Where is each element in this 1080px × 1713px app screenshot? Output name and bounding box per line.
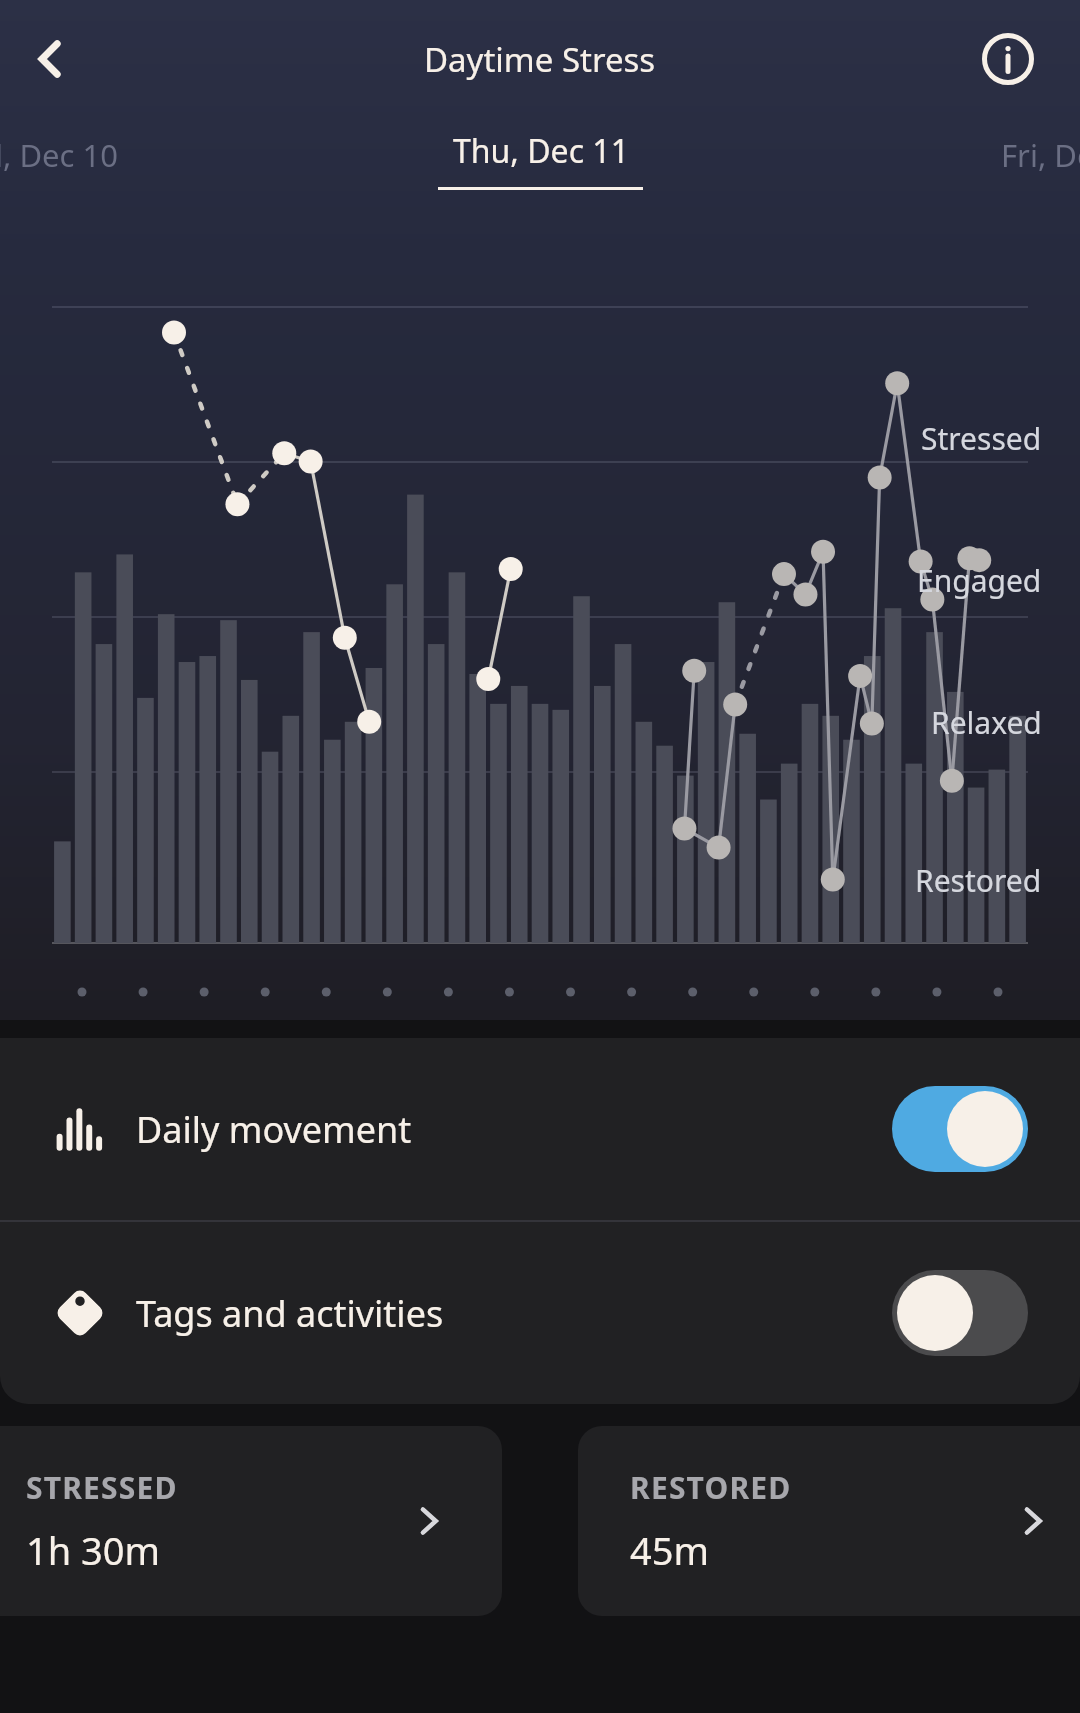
staticText: 12 pm (344, 1034, 430, 1073)
button[interactable]: Thu, Dec 11 (438, 129, 643, 190)
staticText: RESTORED (630, 1467, 792, 1508)
button[interactable]: RESTORED (578, 1426, 1080, 1616)
button[interactable]: Fri, Dec (1001, 134, 1080, 176)
button[interactable]: On (892, 1086, 1028, 1172)
staticText: Daily movement (136, 1105, 412, 1154)
button[interactable]: STRESSED (0, 1426, 502, 1616)
staticText: Relaxed (931, 702, 1042, 743)
staticText: 1h 30m (26, 1524, 161, 1576)
staticText: Thu, Dec 11 (453, 129, 629, 173)
staticText: Stressed (921, 418, 1042, 459)
staticText: 7:31 am (16, 1034, 125, 1073)
staticText: 6 pm (648, 1034, 718, 1073)
button[interactable]: Back (10, 19, 90, 99)
button[interactable]: d, Dec 10 (0, 134, 118, 176)
staticText: 45m (630, 1524, 710, 1576)
staticText: Engaged (917, 560, 1042, 601)
staticText: 10:40 pm (937, 1034, 1064, 1073)
button[interactable]: Off (892, 1270, 1028, 1356)
staticText: Daytime Stress (424, 37, 656, 82)
button[interactable]: Information (972, 23, 1044, 95)
staticText: STRESSED (26, 1467, 178, 1508)
button[interactable]: Daily movement (0, 1038, 1080, 1220)
button[interactable]: Tags and activities (0, 1222, 1080, 1404)
staticText: Tags and activities (136, 1289, 444, 1338)
staticText: Restored (915, 860, 1042, 901)
